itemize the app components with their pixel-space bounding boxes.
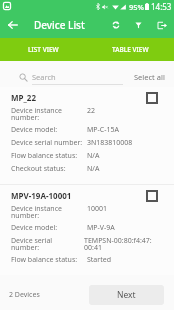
staticText: N/A: [87, 164, 166, 174]
button[interactable]: Refresh: [104, 12, 127, 38]
staticText: 95%: [129, 2, 144, 12]
staticText: 10001: [87, 204, 166, 214]
button[interactable]: Next: [89, 285, 164, 305]
staticText: TEMPSN-00:80:f4:47: 00:41: [84, 236, 166, 252]
staticText: LIST VIEW: [28, 45, 59, 54]
staticText: 22: [87, 106, 166, 116]
button[interactable]: Select device: [146, 92, 158, 104]
button[interactable]: MPV-19A-10001: [0, 185, 174, 275]
staticText: MP-C-15A: [87, 125, 166, 135]
staticText: Device model:: [11, 223, 83, 233]
staticText: MPV-19A-10001: [11, 190, 72, 201]
button[interactable]: LIST VIEW: [0, 38, 87, 61]
button[interactable]: Search: [32, 71, 123, 85]
button[interactable]: Log out: [150, 12, 174, 38]
staticText: Flow balance status:: [11, 255, 83, 265]
button[interactable]: Search: [19, 73, 28, 82]
staticText: Started: [87, 255, 166, 265]
staticText: TABLE VIEW: [112, 45, 149, 54]
button[interactable]: Select device: [146, 190, 158, 202]
staticText: N/A: [87, 151, 166, 161]
staticText: Search: [32, 72, 56, 82]
staticText: 3N183810008: [87, 138, 166, 148]
staticText: Device instance number:: [11, 106, 83, 122]
staticText: Device serial number:: [11, 138, 83, 148]
button[interactable]: TABLE VIEW: [87, 38, 174, 61]
staticText: Flow balance status:: [11, 151, 83, 161]
button[interactable]: Back: [0, 12, 28, 38]
staticText: Device List: [34, 18, 85, 32]
staticText: Device instance number:: [11, 204, 83, 220]
staticText: Next: [117, 289, 136, 301]
staticText: Select all: [134, 72, 165, 82]
button[interactable]: Select all: [134, 72, 165, 82]
staticText: 2 Devices: [9, 290, 40, 300]
staticText: Device model:: [11, 125, 83, 135]
button[interactable]: MP_22: [0, 87, 174, 184]
staticText: Device serial number:: [11, 236, 80, 252]
staticText: MP-V-9A: [87, 223, 166, 233]
staticText: MP_22: [11, 92, 36, 103]
button[interactable]: Filter: [127, 12, 150, 38]
staticText: Checkout status:: [11, 164, 83, 174]
staticText: 14:53: [151, 1, 172, 12]
